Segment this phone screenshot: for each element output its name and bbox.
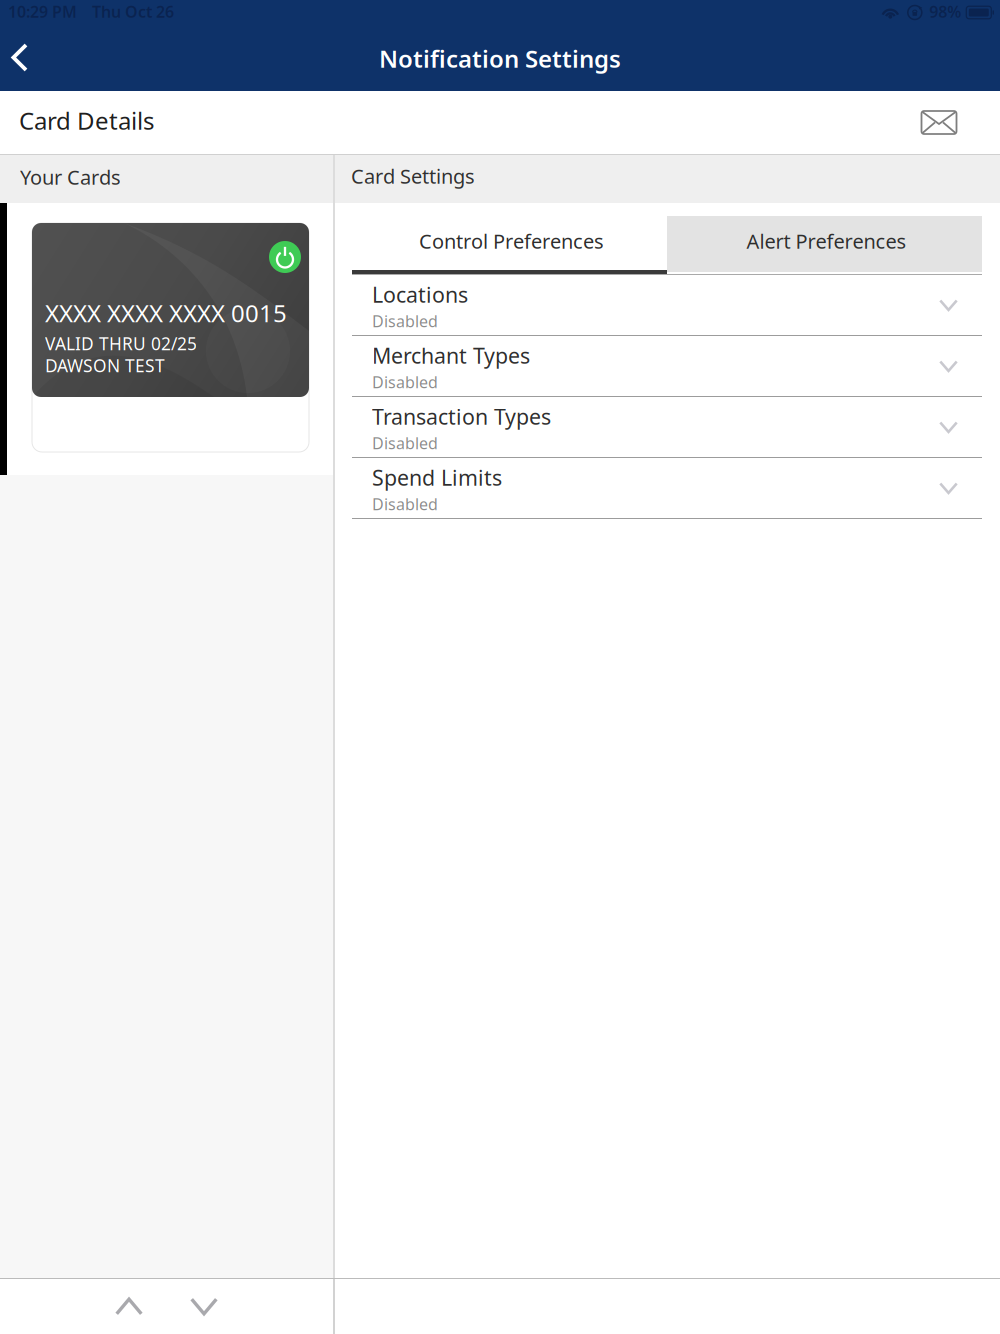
button[interactable]: Alert Preferences <box>667 216 982 274</box>
button[interactable]: Locations <box>352 275 982 336</box>
staticText: Card Settings <box>351 163 475 189</box>
button[interactable]: Back <box>0 28 56 91</box>
staticText: 98% <box>929 1 961 22</box>
staticText: Disabled <box>372 371 438 393</box>
button[interactable]: Merchant Types <box>352 336 982 397</box>
staticText: Notification Settings <box>379 43 621 74</box>
staticText: VALID THRU 02/25 <box>45 332 197 355</box>
staticText: DAWSON TEST <box>45 354 165 377</box>
staticText: Disabled <box>372 493 438 515</box>
staticText: Control Preferences <box>419 228 604 254</box>
button[interactable]: Messages <box>914 97 964 147</box>
staticText: Transaction Types <box>372 402 551 430</box>
staticText: Disabled <box>372 310 438 332</box>
staticText: Spend Limits <box>372 463 502 491</box>
button[interactable]: Previous field <box>105 1282 153 1330</box>
staticText: Your Cards <box>20 164 121 190</box>
button[interactable]: Next field <box>180 1282 228 1330</box>
staticText: Locations <box>372 280 468 308</box>
staticText: Card Details <box>19 105 154 136</box>
button[interactable]: Card XXXX XXXX XXXX 0015, DAWSON TEST <box>32 223 309 452</box>
staticText: 10:29 PM <box>8 1 77 22</box>
staticText: Alert Preferences <box>746 228 906 254</box>
button[interactable]: Spend Limits <box>352 458 982 519</box>
staticText: Thu Oct 26 <box>92 1 174 22</box>
staticText: XXXX XXXX XXXX 0015 <box>45 297 287 329</box>
staticText: Disabled <box>372 432 438 454</box>
button[interactable]: Control Preferences <box>352 216 667 274</box>
staticText: Merchant Types <box>372 341 530 369</box>
button[interactable]: Transaction Types <box>352 397 982 458</box>
